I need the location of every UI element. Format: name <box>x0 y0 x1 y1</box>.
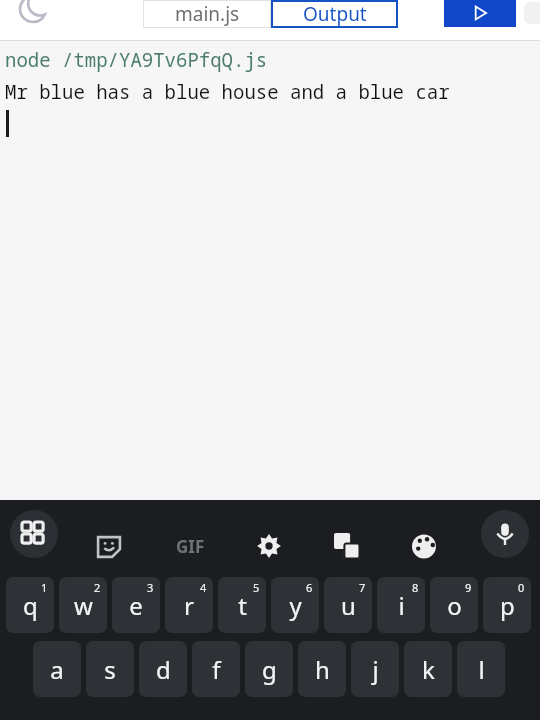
staticText: p <box>500 589 515 622</box>
button[interactable]: g <box>245 641 293 697</box>
staticText: 0 <box>518 580 525 595</box>
button[interactable]: Settings <box>248 525 290 567</box>
button[interactable]: p <box>483 577 531 633</box>
staticText: i <box>398 589 405 622</box>
button[interactable]: f <box>192 641 240 697</box>
button[interactable]: Run <box>444 0 516 27</box>
button[interactable]: Toggle dark mode <box>18 0 48 24</box>
button[interactable]: GIF <box>160 525 220 567</box>
button[interactable]: Keyboard switcher <box>10 510 58 558</box>
button[interactable]: o <box>430 577 478 633</box>
staticText: w <box>74 589 93 622</box>
staticText: main.js <box>175 1 240 27</box>
staticText: 9 <box>465 580 472 595</box>
button[interactable]: t <box>218 577 266 633</box>
staticText: k <box>422 653 435 686</box>
button[interactable]: Output <box>271 0 398 28</box>
staticText: 2 <box>94 580 101 595</box>
button[interactable]: y <box>271 577 319 633</box>
button[interactable]: w <box>59 577 107 633</box>
button[interactable]: e <box>112 577 160 633</box>
staticText: q <box>23 589 38 622</box>
button[interactable]: a <box>33 641 81 697</box>
button[interactable]: j <box>351 641 399 697</box>
staticText: 8 <box>412 580 419 595</box>
button[interactable]: d <box>139 641 187 697</box>
staticText: GIF <box>176 535 205 558</box>
button[interactable]: Stickers <box>88 525 130 567</box>
staticText: l <box>478 653 485 686</box>
staticText: 4 <box>200 580 207 595</box>
staticText: 1 <box>41 580 48 595</box>
staticText: j <box>372 653 379 686</box>
staticText: y <box>289 589 302 622</box>
button[interactable]: i <box>377 577 425 633</box>
button[interactable]: s <box>86 641 134 697</box>
button[interactable]: main.js <box>143 0 271 28</box>
staticText: r <box>184 589 194 622</box>
staticText: u <box>341 589 356 622</box>
staticText: e <box>129 589 143 622</box>
staticText: d <box>156 653 171 686</box>
staticText: g <box>262 653 277 686</box>
staticText: t <box>238 589 247 622</box>
staticText: o <box>447 589 462 622</box>
staticText: Output <box>303 1 367 27</box>
button[interactable]: r <box>165 577 213 633</box>
staticText: 6 <box>306 580 313 595</box>
button[interactable]: Translate <box>326 525 368 567</box>
staticText: a <box>50 653 64 686</box>
staticText: node /tmp/YA9Tv6PfqQ.js <box>5 47 268 73</box>
staticText: h <box>315 653 330 686</box>
staticText: Mr blue has a blue house and a blue car <box>5 79 450 105</box>
staticText: 5 <box>253 580 260 595</box>
button[interactable]: h <box>298 641 346 697</box>
button[interactable]: Theme <box>404 525 446 567</box>
button[interactable]: q <box>6 577 54 633</box>
staticText: s <box>104 653 116 686</box>
staticText: f <box>212 653 221 686</box>
staticText: 7 <box>359 580 366 595</box>
button[interactable]: l <box>457 641 505 697</box>
button[interactable]: Voice input <box>481 510 529 558</box>
button[interactable]: u <box>324 577 372 633</box>
staticText: 3 <box>147 580 154 595</box>
button[interactable]: k <box>404 641 452 697</box>
